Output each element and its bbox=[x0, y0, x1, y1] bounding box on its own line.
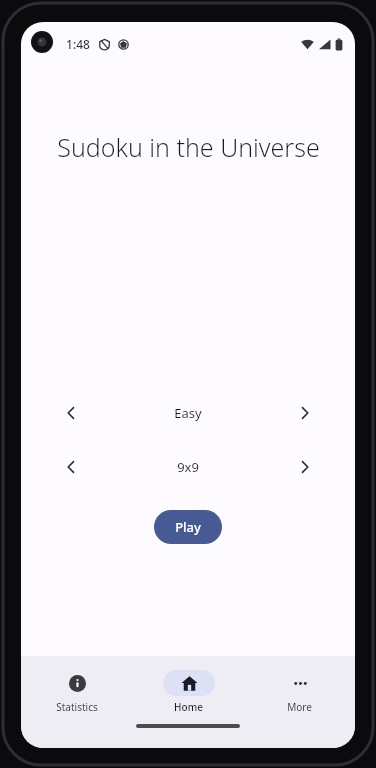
button[interactable]: Play bbox=[154, 510, 222, 544]
staticText: Play bbox=[175, 518, 201, 536]
button[interactable]: Previous difficulty bbox=[55, 397, 87, 429]
staticText: Home bbox=[174, 700, 203, 714]
button[interactable]: Statistics bbox=[21, 666, 133, 714]
staticText: Sudoku in the Universe bbox=[57, 130, 320, 164]
staticText: Statistics bbox=[56, 700, 98, 714]
button[interactable]: Next difficulty bbox=[289, 397, 321, 429]
button[interactable]: Previous board size bbox=[55, 451, 87, 483]
button[interactable]: More bbox=[244, 666, 355, 714]
staticText: 1:48 bbox=[66, 36, 90, 52]
button[interactable]: Home bbox=[133, 666, 244, 714]
staticText: 9x9 bbox=[177, 458, 199, 476]
staticText: Easy bbox=[174, 404, 202, 422]
button[interactable]: Next board size bbox=[289, 451, 321, 483]
staticText: More bbox=[287, 700, 312, 714]
